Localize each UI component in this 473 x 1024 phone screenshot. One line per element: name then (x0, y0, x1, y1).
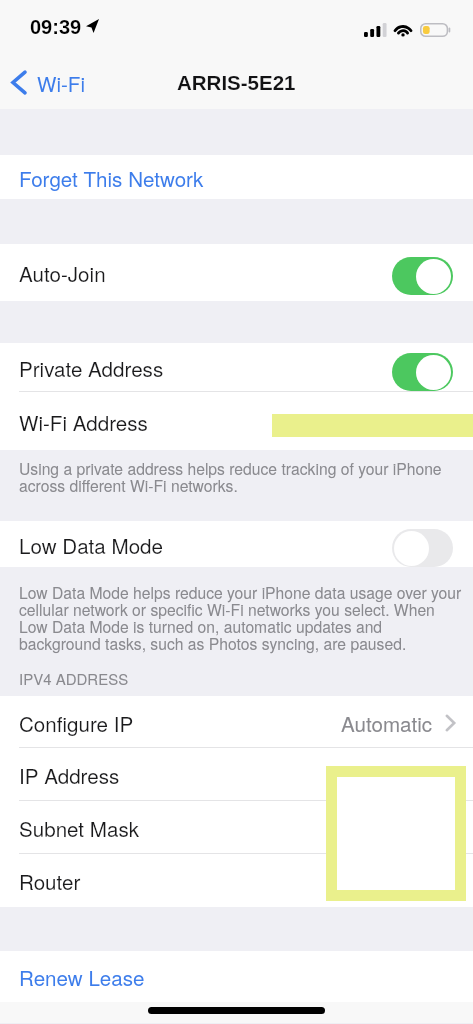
staticText: IP Address (19, 760, 120, 789)
other: Wi-Fi connected (393, 23, 413, 37)
staticText: Subnet Mask (19, 813, 139, 842)
staticText: Auto-Join (19, 258, 106, 287)
button[interactable]: Low Data Mode (0, 521, 473, 567)
staticText: IPV4 ADDRESS (19, 668, 129, 689)
staticText: Automatic (341, 708, 433, 737)
staticText: Wi-Fi Address (19, 407, 148, 436)
staticText: Renew Lease (19, 962, 145, 991)
button[interactable]: IP Address (0, 748, 473, 801)
button[interactable]: Private Address (0, 343, 473, 392)
staticText: ARRIS-5E21 (177, 71, 296, 94)
button[interactable]: Forget This Network (0, 155, 473, 199)
other: Battery (420, 23, 452, 37)
staticText: Low Data Mode (19, 530, 164, 559)
staticText: Wi-Fi (37, 68, 86, 97)
button[interactable]: Switch, on (392, 257, 453, 295)
staticText: Forget This Network (19, 163, 204, 192)
button[interactable]: Auto-Join (0, 244, 473, 301)
staticText: Private Address (19, 353, 164, 382)
button[interactable]: Wi-Fi Address (0, 392, 473, 450)
staticText: Using a private address helps reduce tra… (19, 457, 467, 496)
button[interactable]: Subnet Mask (0, 801, 473, 854)
button[interactable]: Switch, on (392, 353, 453, 391)
other: Back (11, 71, 27, 94)
staticText: Router (19, 866, 81, 895)
staticText: Low Data Mode helps reduce your iPhone d… (19, 581, 467, 654)
other: Location active (86, 19, 99, 33)
button[interactable]: Configure IP (0, 696, 473, 748)
button[interactable]: Switch, off (392, 529, 453, 567)
staticText: Configure IP (19, 708, 134, 737)
button[interactable]: Renew Lease (0, 951, 473, 1002)
staticText: 09:39 (30, 16, 82, 38)
button[interactable]: Back (0, 60, 96, 105)
button[interactable]: Router (0, 854, 473, 907)
other: Cellular signal (364, 23, 386, 37)
